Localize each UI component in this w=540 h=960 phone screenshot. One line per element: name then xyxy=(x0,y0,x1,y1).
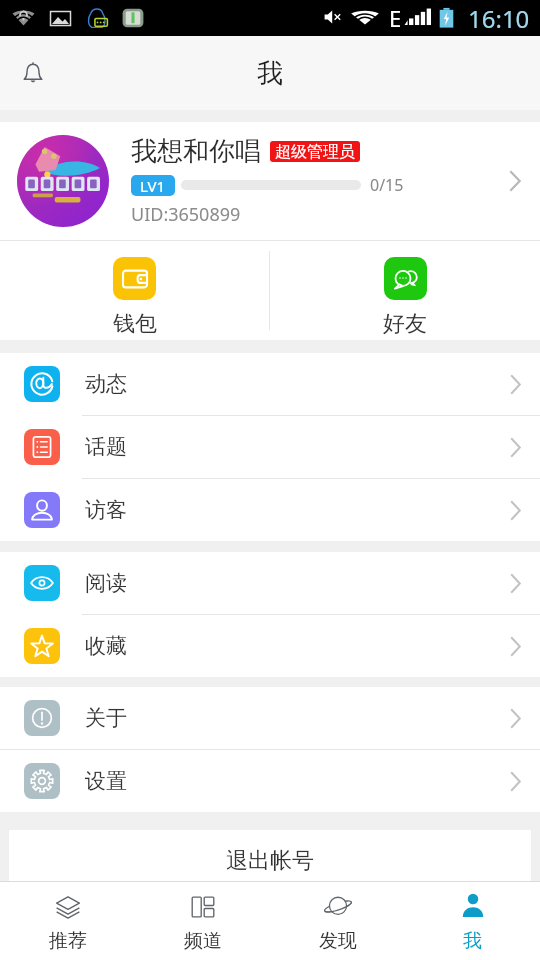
staticText: 设置 xyxy=(85,768,127,794)
button[interactable]: 访客 xyxy=(0,479,540,541)
staticText: LV1 xyxy=(140,176,166,196)
staticText: 钱包 xyxy=(113,310,157,338)
staticText: UID:3650899 xyxy=(131,202,241,227)
staticText: 收藏 xyxy=(85,633,127,659)
button[interactable]: Notifications xyxy=(6,46,60,100)
button[interactable]: 阅读 xyxy=(0,552,540,614)
button[interactable]: 我 xyxy=(405,882,540,960)
staticText: 超级管理员 xyxy=(275,142,355,162)
staticText: 退出帐号 xyxy=(226,847,314,875)
staticText: 推荐 xyxy=(49,929,87,953)
button[interactable]: 设置 xyxy=(0,750,540,812)
staticText: 话题 xyxy=(85,434,127,460)
staticText: 动态 xyxy=(85,371,127,397)
staticText: E xyxy=(389,3,402,33)
button[interactable]: 收藏 xyxy=(0,615,540,677)
staticText: 关于 xyxy=(85,705,127,731)
button[interactable]: 发现 xyxy=(270,882,405,960)
staticText: 阅读 xyxy=(85,570,127,596)
staticText: 访客 xyxy=(85,497,127,523)
button[interactable]: 关于 xyxy=(0,687,540,749)
button[interactable]: 话题 xyxy=(0,416,540,478)
staticText: 发现 xyxy=(319,929,357,953)
staticText: 好友 xyxy=(383,310,427,338)
button[interactable]: 好友 xyxy=(270,241,540,340)
staticText: 0/15 xyxy=(370,174,404,196)
button[interactable]: 钱包 xyxy=(0,241,269,340)
staticText: 频道 xyxy=(184,929,222,953)
button[interactable]: 频道 xyxy=(135,882,270,960)
button[interactable]: 推荐 xyxy=(0,882,135,960)
button[interactable]: 我想和你唱 xyxy=(0,122,540,340)
button[interactable]: 退出帐号 xyxy=(9,830,531,881)
staticText: 我 xyxy=(257,57,283,90)
button[interactable]: 动态 xyxy=(0,353,540,415)
staticText: 我想和你唱 xyxy=(131,135,261,168)
staticText: 我 xyxy=(463,929,482,953)
staticText: 16:10 xyxy=(468,2,530,35)
